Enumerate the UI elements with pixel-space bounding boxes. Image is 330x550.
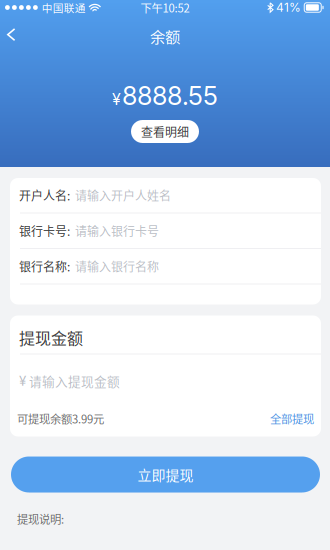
staticText: 41%	[276, 0, 301, 15]
staticText: 可提现余额3.99元	[17, 410, 104, 427]
button[interactable]: 立即提现	[11, 456, 320, 492]
staticText: 查看明细	[141, 123, 189, 140]
staticText: 立即提现	[137, 464, 193, 485]
staticText: 中国联通	[42, 0, 86, 15]
staticText: 8888.55	[122, 80, 218, 111]
staticText: 银行卡号:	[19, 222, 70, 239]
staticText: ¥	[112, 89, 121, 109]
button[interactable]: 全部提现	[270, 410, 314, 427]
staticText: 余额	[150, 25, 180, 47]
staticText: 下午10:52	[140, 0, 189, 16]
staticText: ¥	[19, 373, 26, 389]
staticText: 提现说明:	[17, 510, 64, 527]
staticText: 银行名称:	[19, 258, 70, 275]
staticText: 提现金额	[19, 326, 83, 349]
staticText: 请输入提现金额	[29, 372, 120, 390]
staticText: 请输入银行卡号	[75, 222, 159, 239]
staticText: 请输入开户人姓名	[75, 187, 171, 204]
staticText: 开户人名:	[19, 187, 70, 204]
staticText: 请输入银行名称	[75, 258, 159, 275]
button[interactable]: 返回	[0, 22, 32, 53]
button[interactable]: 查看明细	[131, 120, 199, 143]
staticText: 全部提现	[270, 410, 314, 427]
